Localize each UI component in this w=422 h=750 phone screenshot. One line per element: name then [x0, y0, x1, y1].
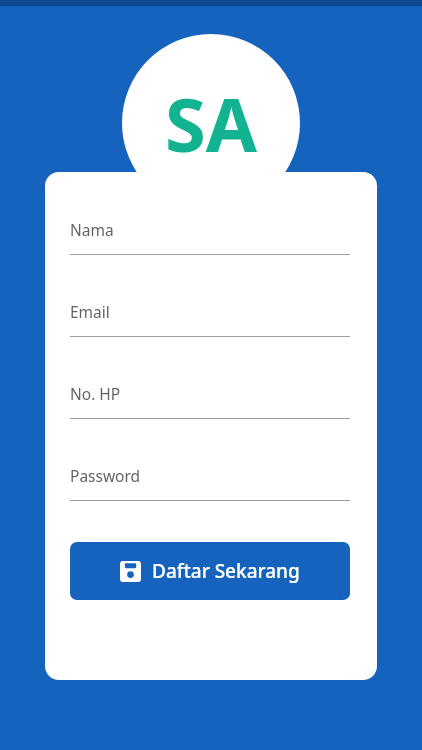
other: Save — [120, 561, 141, 582]
button[interactable]: Password — [70, 451, 350, 501]
button[interactable]: Nama — [70, 205, 350, 255]
button[interactable]: No. HP — [70, 369, 350, 419]
staticText: Nama — [70, 219, 114, 240]
button[interactable]: Save — [70, 542, 350, 600]
button[interactable]: Email — [70, 287, 350, 337]
staticText: Daftar Sekarang — [152, 558, 300, 584]
staticText: Email — [70, 301, 110, 322]
staticText: No. HP — [70, 383, 121, 404]
staticText: Password — [70, 465, 141, 486]
staticText: SA — [165, 73, 257, 174]
